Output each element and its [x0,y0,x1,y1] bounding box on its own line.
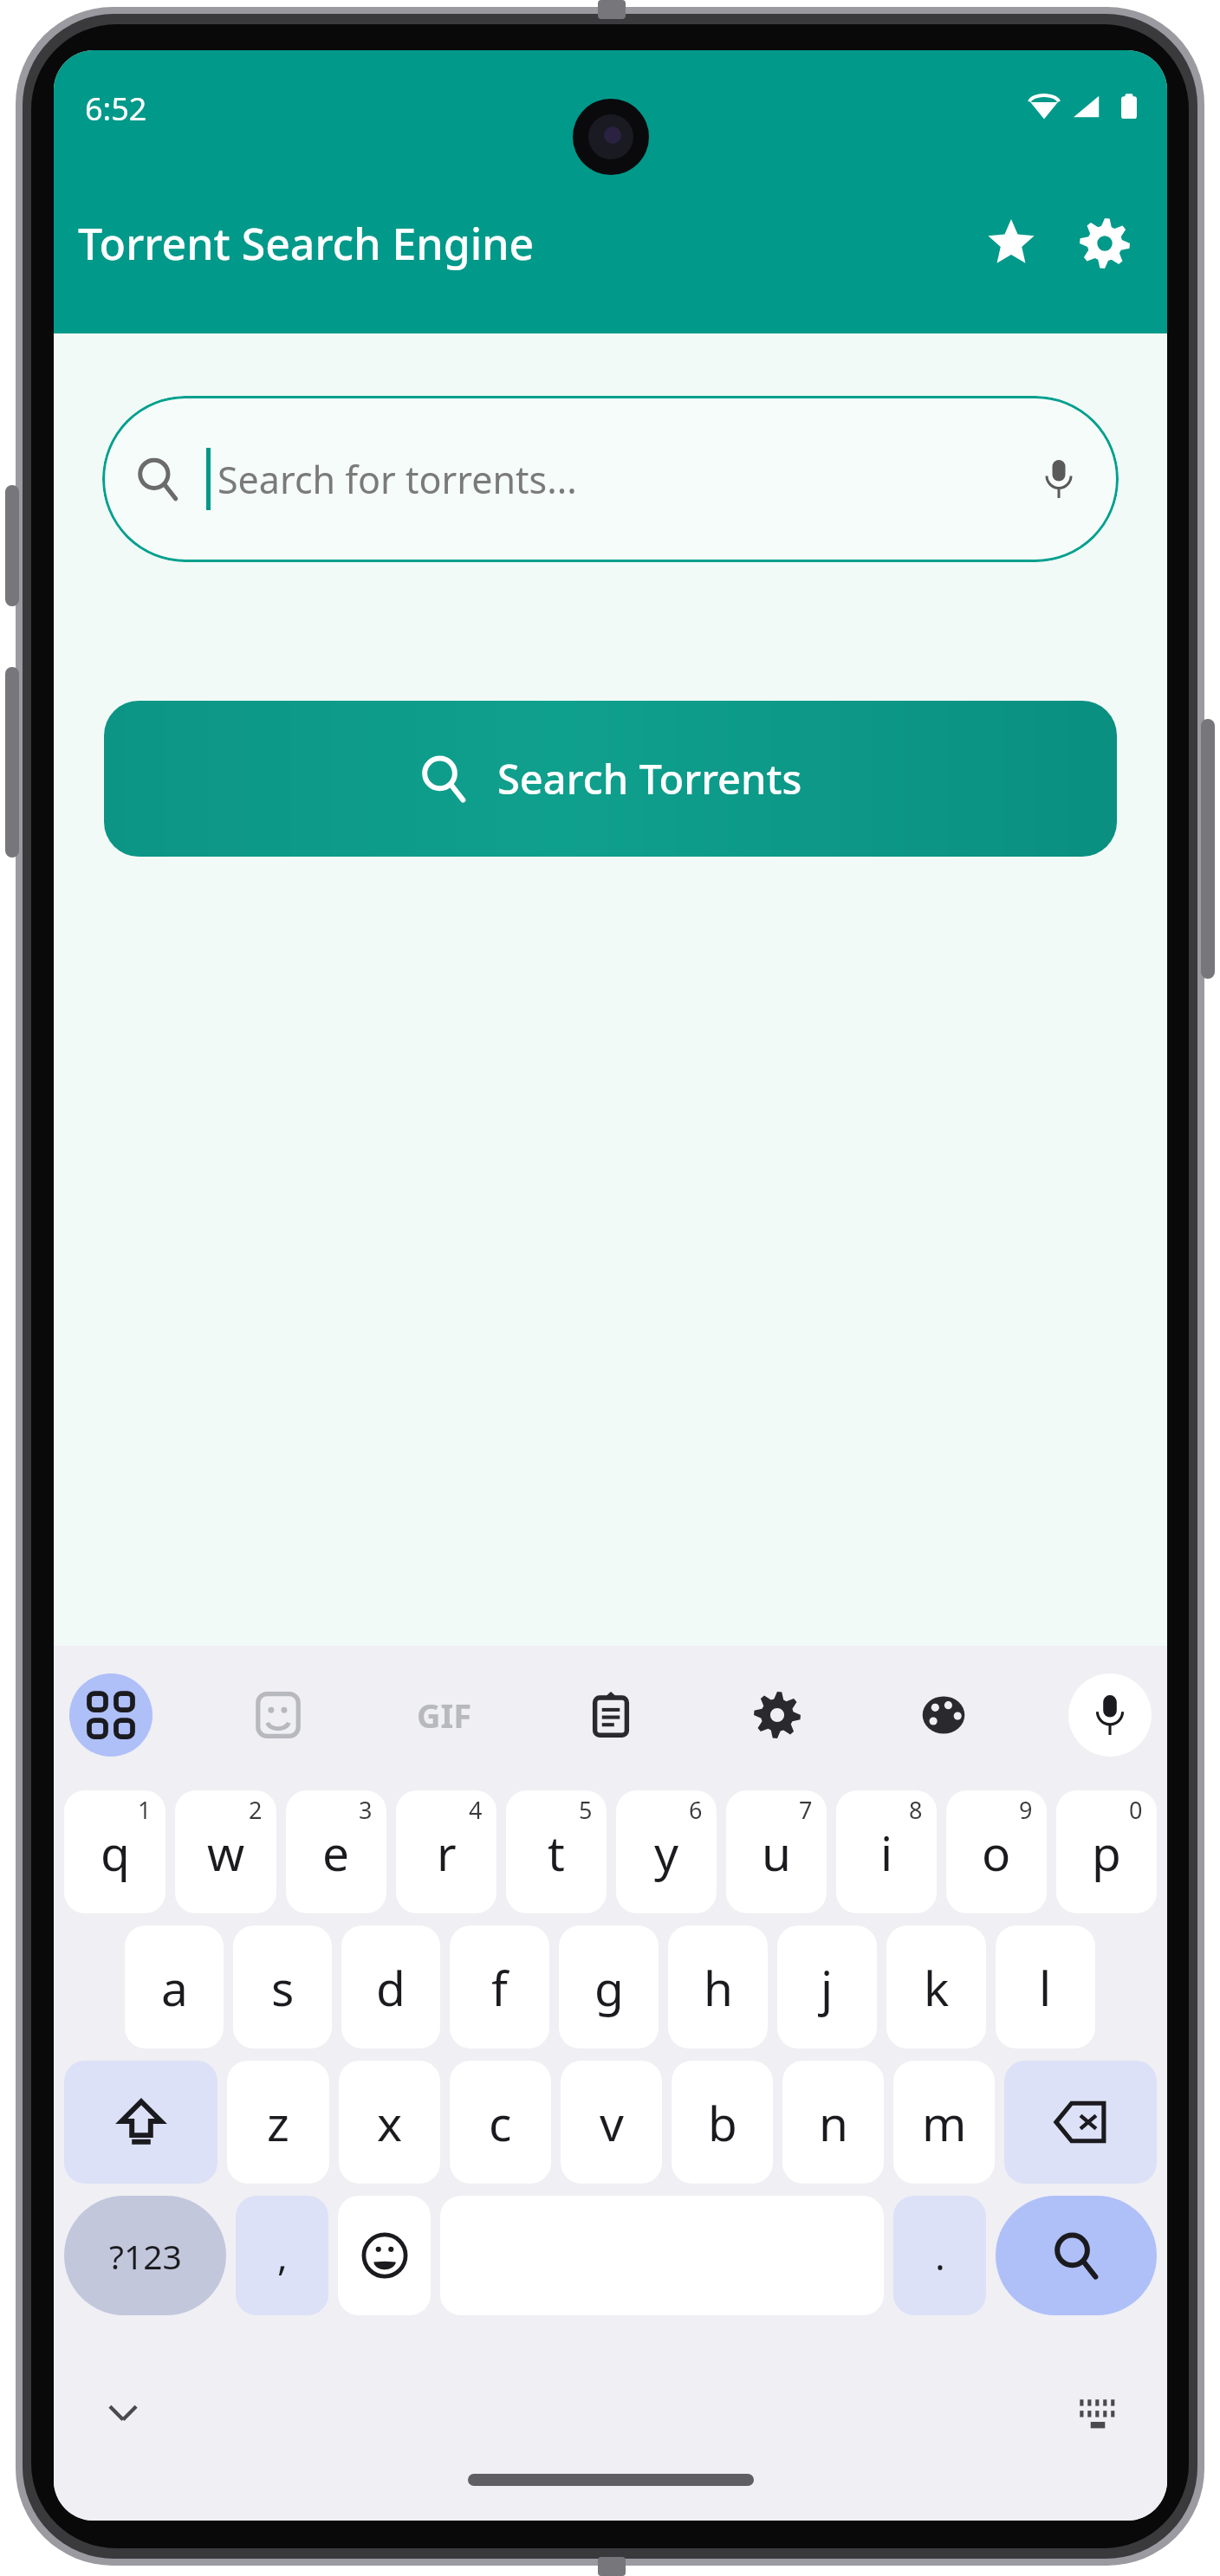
staticText: m [922,2090,967,2155]
staticText: 6:52 [85,87,147,130]
button[interactable]: g [559,1926,659,2049]
button[interactable]: h [668,1926,768,2049]
staticText: e [322,1820,350,1885]
button[interactable]: Keyboard settings [736,1673,819,1757]
button[interactable]: j [777,1926,877,2049]
button[interactable]: f [450,1926,549,2049]
staticText: 5 [579,1794,593,1826]
staticText: q [101,1820,130,1885]
staticText: Search for torrents... [217,454,1029,505]
button[interactable]: a [125,1926,224,2049]
button[interactable]: Search for torrents... [102,396,1119,562]
button[interactable]: r [396,1790,496,1913]
button[interactable]: s [233,1926,332,2049]
staticText: 7 [799,1794,813,1826]
button[interactable]: o [946,1790,1047,1913]
staticText: x [377,2090,403,2155]
button[interactable]: m [893,2061,995,2184]
staticText: 8 [909,1794,923,1826]
staticText: w [207,1820,245,1885]
staticText: s [271,1955,295,2020]
staticText: GIF [417,1693,472,1738]
button[interactable]: e [286,1790,386,1913]
button[interactable]: t [506,1790,607,1913]
staticText: 4 [469,1794,483,1826]
button[interactable]: Backspace [1004,2061,1157,2184]
staticText: 3 [359,1794,373,1826]
button[interactable]: Switch keyboard [1067,2381,1129,2443]
staticText: Torrent Search Engine [78,214,964,273]
staticText: y [654,1820,679,1885]
staticText: , [277,2230,288,2282]
staticText: r [437,1820,457,1885]
button[interactable]: Voice input [1068,1673,1152,1757]
button[interactable]: p [1056,1790,1157,1913]
button[interactable]: Search Torrents [104,701,1117,857]
staticText: a [161,1955,188,2020]
button[interactable]: ?123 [64,2196,226,2315]
staticText: ?123 [109,2233,182,2279]
button[interactable]: Emoji [338,2196,431,2315]
button[interactable]: z [227,2061,329,2184]
button[interactable]: Settings [1058,197,1152,290]
staticText: g [594,1955,624,2020]
button[interactable]: Voice search [1029,449,1089,509]
button[interactable]: c [450,2061,551,2184]
button[interactable]: v [561,2061,662,2184]
staticText: k [924,1955,950,2020]
staticText: i [880,1820,893,1885]
staticText: v [600,2090,624,2155]
button[interactable]: . [893,2196,986,2315]
button[interactable]: Hide keyboard [92,2381,154,2443]
button[interactable]: q [64,1790,165,1913]
staticText: 1 [138,1794,152,1826]
staticText: 6 [689,1794,703,1826]
button[interactable]: u [726,1790,827,1913]
button[interactable]: b [672,2061,773,2184]
button[interactable]: i [836,1790,937,1913]
button[interactable]: k [886,1926,986,2049]
button[interactable]: d [341,1926,440,2049]
button[interactable]: x [339,2061,440,2184]
button[interactable]: y [616,1790,717,1913]
button[interactable]: Themes [902,1673,985,1757]
staticText: h [704,1955,733,2020]
button[interactable]: l [996,1926,1095,2049]
button[interactable]: Stickers [237,1673,320,1757]
button[interactable]: Shift [64,2061,217,2184]
button[interactable]: Search [996,2196,1157,2315]
button[interactable]: Keyboard apps [69,1673,152,1757]
staticText: 9 [1019,1794,1033,1826]
staticText: j [821,1955,834,2020]
staticText: 0 [1129,1794,1143,1826]
staticText: 2 [249,1794,263,1826]
staticText: b [708,2090,737,2155]
button[interactable]: Favorites [964,197,1058,290]
staticText: c [489,2090,512,2155]
staticText: t [548,1820,565,1885]
button[interactable]: n [782,2061,884,2184]
staticText: o [982,1820,1011,1885]
button[interactable]: GIF [403,1673,486,1757]
button[interactable]: w [175,1790,276,1913]
staticText: Search Torrents [497,751,802,806]
staticText: f [491,1955,508,2020]
button[interactable]: Clipboard [569,1673,652,1757]
staticText: . [935,2230,945,2282]
staticText: u [762,1820,791,1885]
staticText: l [1039,1955,1052,2020]
button[interactable]: , [236,2196,328,2315]
staticText: z [267,2090,289,2155]
staticText: p [1092,1820,1121,1885]
staticText: n [819,2090,848,2155]
staticText: d [376,1955,406,2020]
